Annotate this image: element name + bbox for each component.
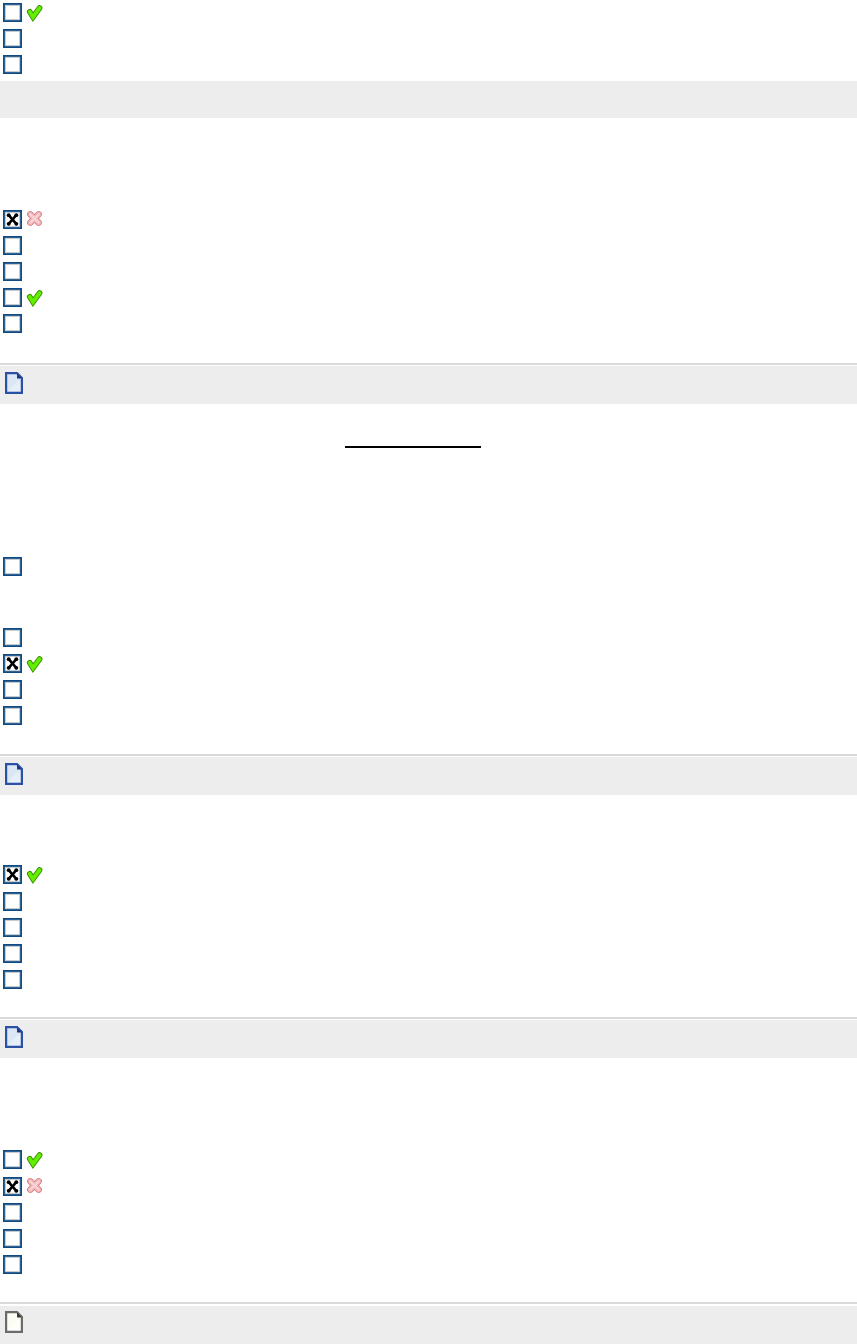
button[interactable]: Answer option — [0, 55, 857, 74]
button[interactable]: Answer option — [0, 236, 857, 255]
button[interactable]: Checkbox, not checked — [3, 557, 22, 576]
other: Incorrect — [27, 1178, 42, 1193]
button[interactable]: Checkbox, checked — [3, 865, 22, 884]
button[interactable]: Checkbox, not checked — [3, 970, 22, 989]
button[interactable]: Checkbox, not checked — [3, 944, 22, 963]
button[interactable]: Answer option — [0, 29, 857, 48]
button[interactable]: Answer option — [0, 918, 857, 937]
button[interactable]: Checkbox, not checked — [3, 288, 22, 307]
button[interactable]: Answer option — [0, 628, 857, 647]
button[interactable]: Answer option — [0, 262, 857, 281]
other: Correct — [27, 5, 42, 20]
other: Correct — [27, 656, 42, 671]
button[interactable]: Checkbox, not checked — [3, 628, 22, 647]
button[interactable]: Checkbox, checked — [3, 1177, 22, 1196]
button[interactable]: Checkbox, not checked — [3, 236, 22, 255]
button[interactable]: Answer option — [0, 1255, 857, 1274]
button[interactable]: Checkbox, not checked — [3, 3, 22, 22]
button[interactable]: Checkbox, not checked — [3, 262, 22, 281]
button[interactable]: Answer option, correct answer — [0, 865, 857, 884]
button[interactable]: Checkbox, checked — [3, 210, 22, 229]
button[interactable]: Answer option — [0, 944, 857, 963]
button[interactable]: Answer option — [0, 557, 857, 576]
button[interactable]: Checkbox, not checked — [3, 1150, 22, 1169]
button[interactable]: Answer option, correct answer — [0, 654, 857, 673]
button[interactable]: Answer option, correct answer — [0, 1150, 857, 1169]
button[interactable]: Checkbox, not checked — [3, 314, 22, 333]
button[interactable]: Checkbox, not checked — [3, 1229, 22, 1248]
other: Correct — [27, 290, 42, 305]
button[interactable]: Answer option — [0, 1229, 857, 1248]
button[interactable]: Checkbox, not checked — [3, 29, 22, 48]
button[interactable]: Answer option — [0, 1203, 857, 1222]
button[interactable]: Answer option — [0, 680, 857, 699]
button[interactable]: Checkbox, not checked — [3, 680, 22, 699]
button[interactable]: Question heading — [0, 1306, 857, 1344]
button[interactable]: Checkbox, not checked — [3, 1203, 22, 1222]
button[interactable]: Answer option, correct answer — [0, 288, 857, 307]
button[interactable]: Checkbox, not checked — [3, 1255, 22, 1274]
button[interactable]: Question heading — [0, 1020, 857, 1058]
button[interactable]: Answer option — [0, 314, 857, 333]
button[interactable]: Answer option, correct answer — [0, 3, 857, 22]
button[interactable]: Checkbox, checked — [3, 654, 22, 673]
button[interactable]: Answer option — [0, 706, 857, 725]
button[interactable]: Checkbox, not checked — [3, 918, 22, 937]
button[interactable]: Checkbox, not checked — [3, 55, 22, 74]
other: Correct — [27, 867, 42, 882]
button[interactable]: Question heading — [0, 366, 857, 404]
button[interactable]: Answer option — [0, 892, 857, 911]
button[interactable]: Answer option, incorrect answer — [0, 1177, 857, 1196]
button[interactable]: Checkbox, not checked — [3, 892, 22, 911]
button[interactable]: Question heading — [0, 757, 857, 795]
other: Correct — [27, 1152, 42, 1167]
button[interactable]: Checkbox, not checked — [3, 706, 22, 725]
button[interactable]: Answer option — [0, 970, 857, 989]
other: Incorrect — [27, 211, 42, 226]
button[interactable]: Answer option, incorrect answer — [0, 210, 857, 229]
